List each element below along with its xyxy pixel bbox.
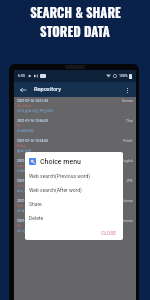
staticText: 2021-01-14 16:03:32: [17, 159, 49, 163]
staticText: English: [122, 159, 133, 163]
staticText: 2021-01-14 15:01:26: [17, 199, 49, 203]
staticText: Repository: [34, 86, 61, 93]
staticText: Web search(After word): [29, 187, 82, 193]
staticText: Hi: [17, 124, 21, 128]
staticText: 2021-01-16 12:54:06: [17, 139, 49, 143]
button[interactable]: 2021-01-16 12:56:33: [14, 117, 136, 137]
button[interactable]: 2021-01-14 14:55:02: [14, 217, 136, 237]
staticText: 감사: [17, 184, 24, 188]
button[interactable]: 2021-01-16 14:21:30: [14, 97, 136, 117]
staticText: Korean: [122, 219, 133, 223]
staticText: ありがとう: [17, 189, 35, 193]
staticText: Yes: [17, 204, 23, 208]
staticText: 다시 보면 서도 제도하다: [17, 109, 54, 113]
staticText: 좋은 하루: [17, 149, 32, 153]
staticText: 2021-01-14 14:55:02: [17, 219, 49, 223]
staticText: 네 알겠습니다: [17, 209, 39, 213]
button[interactable]: 2021-01-14 15:01:26: [14, 197, 136, 217]
staticText: Web search(Previous word): [29, 173, 91, 179]
staticText: CLOSE: [101, 230, 117, 236]
staticText: 100%: [119, 74, 128, 78]
staticText: 사랑해: [17, 169, 28, 173]
staticText: Share: [29, 201, 42, 207]
button[interactable]: Share: [25, 197, 123, 211]
staticText: Choice menu: [40, 158, 81, 166]
staticText: 아니요: [17, 229, 28, 233]
staticText: SEARCH & SHARE: [30, 3, 121, 22]
button[interactable]: Web search(Previous word): [25, 169, 123, 183]
button[interactable]: 2021-01-14 16:09:38: [14, 177, 136, 197]
button[interactable]: 2021-01-14 16:03:32: [14, 157, 136, 177]
staticText: Polish: [123, 139, 133, 143]
button[interactable]: Delete: [25, 211, 123, 225]
staticText: Love: [17, 164, 25, 168]
staticText: 휴가 일본: [17, 104, 32, 108]
staticText: JPN: [126, 179, 133, 183]
staticText: Delete: [29, 215, 44, 221]
staticText: 2021-01-16 12:56:33: [17, 119, 49, 123]
staticText: 6:55: [18, 74, 25, 78]
staticText: Thai: [126, 119, 133, 123]
staticText: 안녕하세요: [17, 129, 34, 133]
staticText: No: [17, 224, 22, 228]
staticText: STORED DATA: [40, 22, 110, 41]
staticText: Dobry: [17, 144, 26, 148]
button[interactable]: 2021-01-16 12:54:06: [14, 137, 136, 157]
button[interactable]: Web search(After word): [25, 183, 123, 197]
staticText: 2021-01-14 16:09:38: [17, 179, 49, 183]
button[interactable]: CLOSE: [99, 228, 119, 238]
staticText: Korean: [122, 99, 133, 103]
button[interactable]: Back: [18, 85, 28, 95]
staticText: 2021-01-16 14:21:30: [17, 99, 49, 103]
staticText: Korean: [122, 199, 133, 203]
button[interactable]: More options: [122, 85, 132, 95]
